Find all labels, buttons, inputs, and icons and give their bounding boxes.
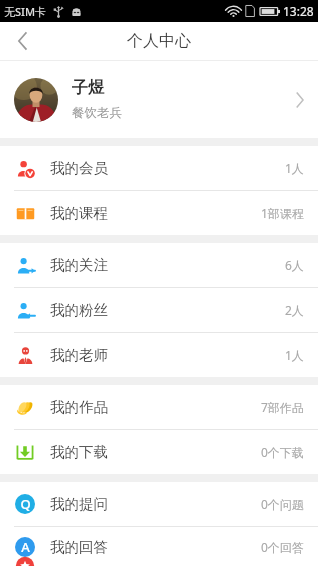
staticText: 餐饮老兵 <box>72 105 122 121</box>
button[interactable]: 我的粉丝 <box>0 288 318 332</box>
staticText: 个人中心 <box>127 31 191 51</box>
button[interactable]: 我的课程 <box>0 191 318 235</box>
button[interactable]: Back <box>0 22 44 60</box>
staticText: 7部作品 <box>261 399 304 415</box>
staticText: 我的作品 <box>50 398 108 416</box>
staticText: 2人 <box>285 302 304 318</box>
staticText: 1人 <box>285 160 304 176</box>
staticText: 1部课程 <box>261 205 304 221</box>
staticText: 6人 <box>285 257 304 273</box>
staticText: 我的关注 <box>50 256 108 274</box>
staticText: 我的粉丝 <box>50 301 108 319</box>
button[interactable]: 子煜 <box>0 61 318 138</box>
button[interactable]: A <box>0 527 318 566</box>
staticText: 我的课程 <box>50 204 108 222</box>
staticText: 0个下载 <box>261 444 304 460</box>
staticText: 我的下载 <box>50 443 108 461</box>
staticText: A <box>21 538 30 556</box>
button[interactable]: 我的下载 <box>0 430 318 474</box>
staticText: 0个回答 <box>261 539 304 555</box>
button[interactable]: 我的会员 <box>0 146 318 190</box>
button[interactable]: 我的作品 <box>0 385 318 429</box>
staticText: 我的会员 <box>50 159 108 177</box>
staticText: 无SIM卡 <box>4 4 47 19</box>
staticText: 子煜 <box>72 78 104 98</box>
staticText: 13:28 <box>283 3 314 19</box>
staticText: 1人 <box>285 347 304 363</box>
staticText: 0个问题 <box>261 496 304 512</box>
staticText: 我的回答 <box>50 538 108 556</box>
button[interactable]: 我的老师 <box>0 333 318 377</box>
staticText: 我的提问 <box>50 495 108 513</box>
button[interactable]: 我的关注 <box>0 243 318 287</box>
staticText: 我的老师 <box>50 346 108 364</box>
button[interactable]: Q <box>0 482 318 526</box>
staticText: Q <box>20 495 31 513</box>
